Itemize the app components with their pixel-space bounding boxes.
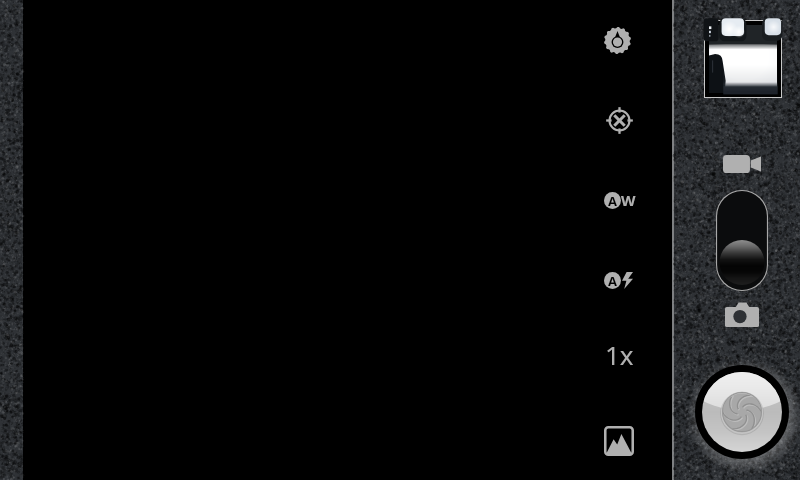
staticText: A	[608, 192, 617, 209]
staticText: W	[621, 190, 636, 210]
button[interactable]: Camera preview, tap to focus	[23, 0, 672, 480]
staticText: 1x	[605, 337, 634, 372]
button[interactable]: Camera mode	[722, 299, 762, 329]
button[interactable]: GPS off	[597, 98, 641, 142]
staticText: A	[608, 272, 617, 289]
button[interactable]: Last photo	[704, 20, 782, 98]
button[interactable]: Auto flash	[600, 260, 640, 300]
button[interactable]: Auto white balance	[600, 180, 640, 220]
button[interactable]: Zoom one times	[599, 334, 639, 374]
button[interactable]: Settings	[595, 18, 639, 62]
button[interactable]: Scene mode	[597, 419, 641, 463]
button[interactable]: Switch camera video mode	[716, 190, 768, 291]
button[interactable]: Video mode	[722, 152, 762, 176]
button[interactable]: Shutter	[692, 362, 792, 462]
